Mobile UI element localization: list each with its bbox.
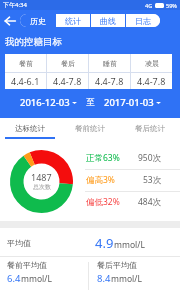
staticText: 2016-12-03 xyxy=(20,96,70,109)
button[interactable]: 曲线 xyxy=(91,14,125,27)
staticText: 总次数 xyxy=(33,183,51,191)
staticText: 4.4-7.8 xyxy=(137,75,166,87)
button[interactable]: 餐前统计 xyxy=(60,118,120,139)
staticText: 53次 xyxy=(143,174,162,186)
staticText: 950次 xyxy=(138,152,162,164)
staticText: 睡前 xyxy=(103,59,117,68)
staticText: 32% xyxy=(103,196,120,208)
staticText: 下午4:34 xyxy=(3,1,27,9)
button[interactable]: 偏低 xyxy=(86,196,162,208)
staticText: mmol/L xyxy=(114,239,145,251)
staticText: 4.4-6.1 xyxy=(11,75,40,87)
staticText: 历史 xyxy=(30,16,46,26)
staticText: 6.4 xyxy=(7,272,21,285)
staticText: 餐前平均值 xyxy=(7,260,47,270)
button[interactable]: 偏高 xyxy=(86,174,162,186)
button[interactable]: 正常 xyxy=(86,152,162,164)
staticText: 日志 xyxy=(135,16,151,26)
staticText: 4G xyxy=(145,2,153,9)
button[interactable]: 2016-12-03 xyxy=(18,96,79,109)
staticText: 正常 xyxy=(86,153,103,164)
staticText: 1487 xyxy=(31,171,52,183)
staticText: 曲线 xyxy=(100,16,116,26)
staticText: 餐后平均值 xyxy=(97,260,137,270)
staticText: 8.4 xyxy=(97,272,111,285)
staticText: 统计 xyxy=(65,16,81,26)
staticText: mmol/L xyxy=(21,273,52,285)
button[interactable]: 历史 xyxy=(20,14,55,27)
staticText: 2017-01-03 xyxy=(104,96,154,109)
button[interactable]: 统计 xyxy=(56,14,90,27)
staticText: 至 xyxy=(86,97,95,108)
staticText: 4.9 xyxy=(95,234,114,252)
staticText: 我的控糖目标 xyxy=(5,36,62,48)
staticText: 偏高 xyxy=(86,175,103,186)
staticText: 平均值 xyxy=(7,238,31,248)
staticText: 餐前 xyxy=(19,59,33,68)
staticText: 餐后 xyxy=(61,59,75,68)
staticText: 达标统计 xyxy=(15,124,45,133)
button[interactable]: 餐后统计 xyxy=(120,118,180,139)
staticText: 餐前统计 xyxy=(75,124,105,133)
staticText: 3% xyxy=(103,174,115,186)
staticText: 4.4-7.8 xyxy=(95,75,124,87)
staticText: 4.4-7.8 xyxy=(53,75,82,87)
staticText: 偏低 xyxy=(86,197,103,208)
staticText: 凌晨 xyxy=(145,59,159,68)
staticText: 484次 xyxy=(138,196,162,208)
button[interactable]: 达标统计 xyxy=(0,118,60,139)
button[interactable]: 2017-01-03 xyxy=(102,96,163,109)
button[interactable]: Back xyxy=(2,13,18,29)
button[interactable]: 日志 xyxy=(126,14,160,27)
staticText: 59% xyxy=(166,2,177,9)
staticText: 63% xyxy=(103,152,120,164)
staticText: 餐后统计 xyxy=(135,124,165,133)
staticText: mmol/L xyxy=(111,273,142,285)
